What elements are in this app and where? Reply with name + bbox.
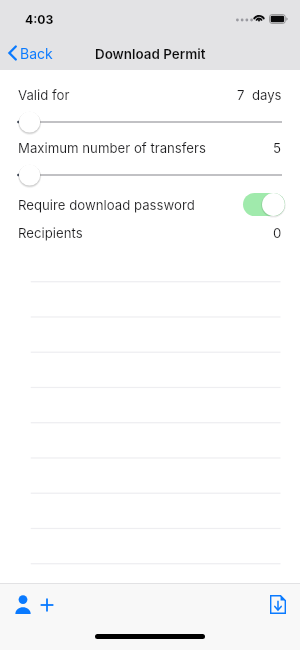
- button[interactable]: Valid for: [0, 85, 300, 105]
- staticText: 4:03: [25, 12, 54, 27]
- button[interactable]: Add recipient: [0, 590, 64, 619]
- staticText: 5: [273, 140, 282, 156]
- button[interactable]: Maximum number of transfers: [0, 138, 300, 158]
- staticText: Recipients: [18, 225, 83, 241]
- staticText: Require download password: [18, 197, 195, 213]
- staticText: Maximum number of transfers: [18, 140, 206, 156]
- staticText: Download Permit: [95, 46, 206, 62]
- button[interactable]: Download: [258, 590, 300, 619]
- button[interactable]: Require download password: [243, 193, 285, 216]
- staticText: Valid for: [18, 87, 70, 103]
- staticText: 7 days: [237, 87, 282, 103]
- button[interactable]: Recipients: [0, 223, 300, 243]
- button[interactable]: Back: [4, 40, 61, 66]
- button[interactable]: Require download password: [0, 193, 300, 216]
- staticText: 0: [273, 225, 282, 241]
- staticText: Back: [20, 45, 53, 62]
